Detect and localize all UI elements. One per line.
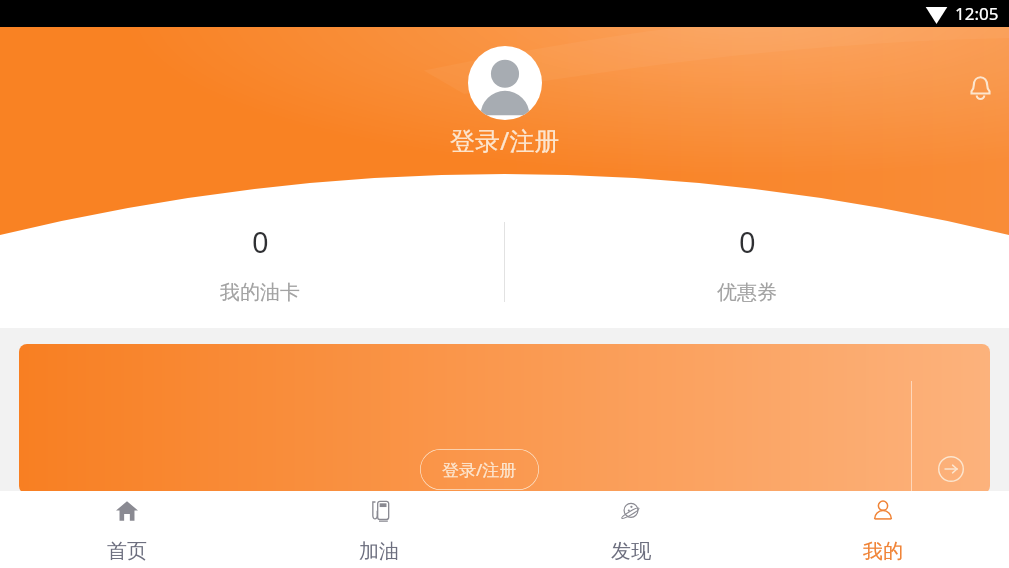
staticText: 登录/注册 [442,458,517,481]
button[interactable]: 登录/注册 [420,449,539,490]
staticText: 发现 [611,539,651,564]
button[interactable]: 登录/注册 [19,344,990,494]
button[interactable]: 0 [160,222,360,305]
button[interactable]: 首页 [0,491,253,568]
staticText: 我的油卡 [220,280,300,305]
staticText: 我的 [863,539,903,564]
staticText: 首页 [107,539,147,564]
button[interactable]: 登录/注册 [450,46,560,157]
staticText: 12:05 [955,2,999,25]
button[interactable]: Notifications [959,66,1001,108]
button[interactable]: Next [934,452,968,486]
button[interactable]: 0 [647,222,847,305]
staticText: 0 [252,222,269,261]
staticText: 0 [739,222,756,261]
staticText: 优惠券 [717,280,777,305]
button[interactable]: 加油 [253,491,505,568]
button[interactable]: 我的 [757,491,1009,568]
staticText: 加油 [359,539,399,564]
staticText: 登录/注册 [450,123,560,157]
button[interactable]: 发现 [505,491,757,568]
